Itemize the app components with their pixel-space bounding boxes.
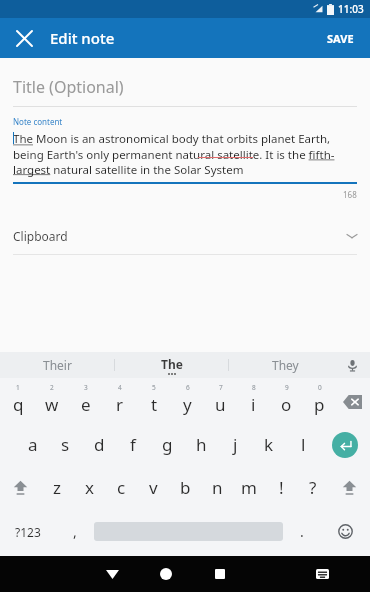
staticText: 2 (50, 383, 54, 392)
button[interactable]: Period (283, 509, 321, 554)
staticText: Title (Optional) (13, 76, 124, 98)
staticText: k (264, 433, 274, 456)
staticText: The Moon is an astronomical body that or… (13, 131, 357, 177)
staticText: i (251, 393, 256, 416)
staticText: 1 (16, 383, 20, 392)
staticText: . (300, 522, 304, 541)
button[interactable]: They (229, 352, 342, 378)
staticText: u (215, 393, 226, 416)
button[interactable]: l (286, 423, 320, 466)
button[interactable]: x (73, 466, 105, 509)
staticText: 7 (219, 383, 223, 392)
button[interactable]: f (116, 423, 150, 466)
button[interactable]: Voice input (341, 354, 363, 376)
button[interactable]: ! (265, 466, 297, 509)
button[interactable]: 1 (1, 380, 35, 423)
button[interactable]: ?123 (0, 509, 56, 554)
button[interactable]: Backspace (336, 380, 369, 423)
staticText: 168 (343, 189, 357, 200)
staticText: l (301, 433, 306, 456)
button[interactable]: b (169, 466, 201, 509)
staticText: 6 (186, 383, 190, 392)
staticText: e (81, 393, 91, 416)
button[interactable]: 3 (69, 380, 103, 423)
button[interactable]: Hide keyboard (85, 556, 139, 592)
staticText: z (53, 476, 61, 499)
staticText: h (196, 433, 207, 456)
staticText: , (73, 522, 77, 541)
staticText: s (61, 433, 70, 456)
staticText: 8 (252, 383, 256, 392)
staticText: They (272, 357, 299, 373)
staticText: 5 (152, 383, 156, 392)
staticText: SAVE (327, 31, 354, 46)
button[interactable]: 8 (237, 380, 270, 423)
staticText: 3 (84, 383, 88, 392)
staticText: 9 (285, 383, 289, 392)
staticText: Clipboard (13, 228, 68, 244)
button[interactable]: Enter (320, 423, 370, 466)
button[interactable]: 6 (171, 380, 204, 423)
button[interactable]: Shift (329, 466, 370, 509)
button[interactable]: s (49, 423, 82, 466)
button[interactable]: 7 (204, 380, 237, 423)
staticText: The (161, 356, 183, 372)
button[interactable]: 5 (137, 380, 171, 423)
button[interactable]: 2 (35, 380, 69, 423)
staticText: d (94, 433, 105, 456)
button[interactable]: Comma (56, 509, 94, 554)
button[interactable]: SAVE (321, 25, 360, 52)
button[interactable]: a (16, 423, 49, 466)
staticText: ?123 (15, 524, 41, 540)
button[interactable]: Home (139, 556, 193, 592)
staticText: Edit note (50, 28, 115, 48)
staticText: Their (43, 357, 72, 373)
button[interactable]: Recents (193, 556, 247, 592)
staticText: t (151, 393, 158, 416)
button[interactable]: v (137, 466, 169, 509)
staticText: r (116, 393, 124, 416)
button[interactable]: 0 (303, 380, 336, 423)
button[interactable]: k (252, 423, 286, 466)
staticText: g (162, 433, 173, 456)
button[interactable]: n (201, 466, 233, 509)
button[interactable]: g (150, 423, 184, 466)
staticText: 0 (318, 383, 322, 392)
button[interactable]: 9 (270, 380, 303, 423)
button[interactable]: The (115, 352, 228, 378)
staticText: y (183, 393, 192, 416)
staticText: f (130, 433, 136, 456)
button[interactable]: c (105, 466, 137, 509)
button[interactable]: h (184, 423, 218, 466)
staticText: c (117, 476, 126, 499)
button[interactable]: 4 (103, 380, 137, 423)
button[interactable]: Shift (0, 466, 41, 509)
staticText: b (180, 476, 191, 499)
staticText: 4 (118, 383, 122, 392)
staticText: a (28, 433, 38, 456)
button[interactable]: Switch keyboard (295, 556, 349, 592)
staticText: j (233, 433, 238, 456)
button[interactable]: Clipboard (13, 218, 357, 254)
button[interactable]: d (82, 423, 116, 466)
staticText: o (281, 393, 292, 416)
staticText: m (241, 476, 257, 499)
staticText: p (314, 393, 325, 416)
button[interactable]: m (233, 466, 265, 509)
staticText: ! (279, 476, 284, 499)
button[interactable]: j (218, 423, 252, 466)
button[interactable]: z (41, 466, 73, 509)
staticText: x (85, 476, 94, 499)
button[interactable]: Emoji (321, 509, 370, 554)
button[interactable]: Their (0, 352, 114, 378)
button[interactable]: Close (8, 22, 40, 54)
button[interactable]: ? (297, 466, 329, 509)
staticText: 11:03 (338, 2, 364, 16)
staticText: v (149, 476, 158, 499)
staticText: w (45, 393, 59, 416)
staticText: q (13, 393, 24, 416)
staticText: ? (309, 476, 317, 499)
staticText: n (212, 476, 223, 499)
staticText: Note content (13, 116, 63, 127)
